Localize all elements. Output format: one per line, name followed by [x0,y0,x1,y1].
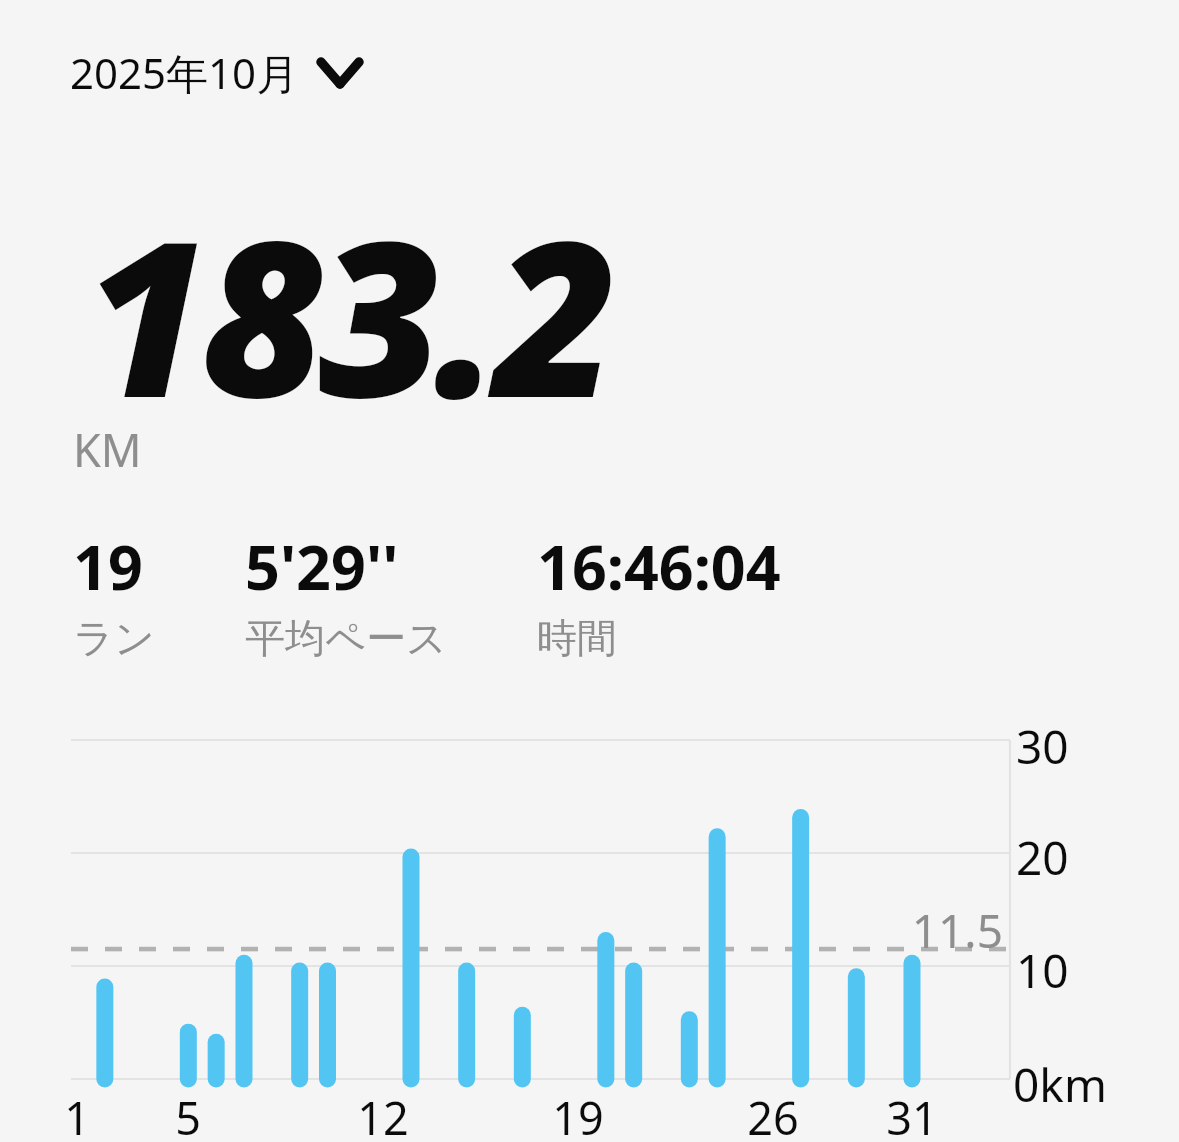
staticText: 1 [27,1087,127,1142]
button[interactable]: 2025年10月 [70,44,363,101]
staticText: 0km [1013,1053,1107,1116]
staticText: 16:46:04 [537,525,781,608]
staticText: 平均ペース [245,613,447,663]
staticText: 5 [138,1087,238,1142]
staticText: 19 [73,525,143,608]
other: Select month [317,55,363,91]
staticText: 12 [333,1087,433,1142]
staticText: 11.5 [873,899,1003,962]
staticText: 20 [1016,826,1069,889]
staticText: 2025年10月 [70,44,299,101]
staticText: 26 [723,1087,823,1142]
button[interactable]: 16:46:04 [537,525,781,663]
staticText: KM [73,419,142,480]
staticText: 時間 [537,613,617,663]
button[interactable]: 5'29'' [245,525,447,663]
staticText: 5'29'' [245,525,399,608]
staticText: ラン [73,613,155,663]
staticText: 31 [862,1087,962,1142]
staticText: 19 [528,1087,628,1142]
button[interactable]: 19 [73,525,155,663]
staticText: 10 [1016,939,1069,1002]
staticText: 30 [1016,715,1069,778]
staticText: 183.2 [84,168,611,459]
